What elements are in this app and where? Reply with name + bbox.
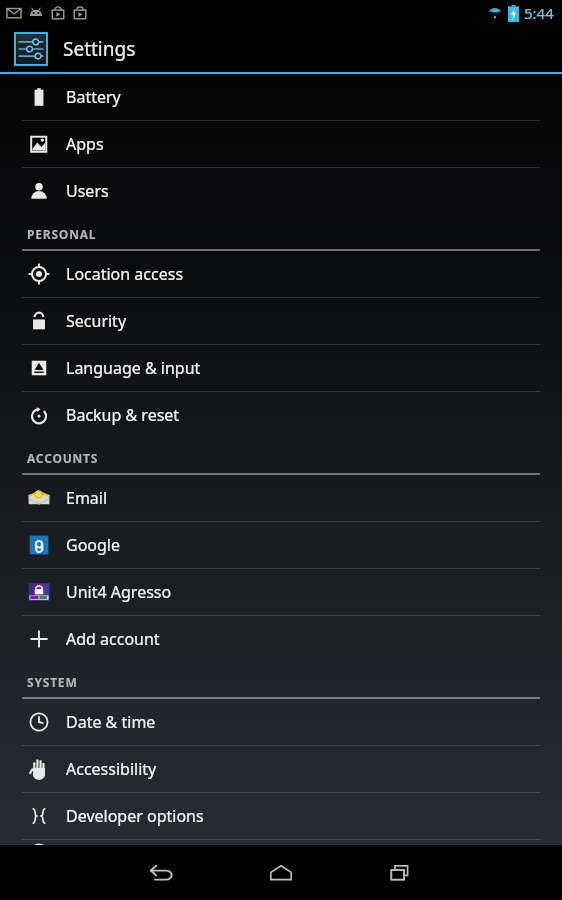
- staticText: Date & time: [66, 711, 156, 733]
- button[interactable]: Email: [0, 475, 562, 521]
- staticText: Developer options: [66, 805, 204, 827]
- staticText: Accessibility: [66, 758, 157, 780]
- staticText: SYSTEM: [27, 674, 78, 690]
- staticText: Location access: [66, 263, 184, 285]
- button[interactable]: Settings: [0, 25, 562, 72]
- button[interactable]: Unit4 Agresso: [0, 569, 562, 615]
- button[interactable]: Back: [101, 845, 221, 900]
- button[interactable]: Battery: [0, 74, 562, 120]
- staticText: Security: [66, 310, 127, 332]
- button[interactable]: Home: [221, 845, 341, 900]
- staticText: 5:44: [524, 3, 554, 23]
- staticText: Apps: [66, 133, 104, 155]
- staticText: Email: [66, 487, 108, 509]
- button[interactable]: About tablet: [0, 840, 562, 845]
- staticText: Unit4 Agresso: [66, 581, 172, 603]
- button[interactable]: Developer options: [0, 793, 562, 839]
- button[interactable]: Language & input: [0, 345, 562, 391]
- button[interactable]: Users: [0, 168, 562, 214]
- staticText: Users: [66, 180, 109, 202]
- button[interactable]: Date & time: [0, 699, 562, 745]
- button[interactable]: Security: [0, 298, 562, 344]
- staticText: Settings: [63, 36, 136, 62]
- button[interactable]: Add account: [0, 616, 562, 662]
- staticText: ACCOUNTS: [27, 450, 99, 466]
- button[interactable]: Recent apps: [341, 845, 461, 900]
- button[interactable]: Accessibility: [0, 746, 562, 792]
- button[interactable]: Google: [0, 522, 562, 568]
- button[interactable]: Location access: [0, 251, 562, 297]
- staticText: Backup & reset: [66, 404, 180, 426]
- staticText: Language & input: [66, 357, 201, 379]
- button[interactable]: Apps: [0, 121, 562, 167]
- staticText: Google: [66, 534, 121, 556]
- staticText: Battery: [66, 86, 121, 108]
- staticText: PERSONAL: [27, 226, 97, 242]
- staticText: Add account: [66, 628, 160, 650]
- button[interactable]: Backup & reset: [0, 392, 562, 438]
